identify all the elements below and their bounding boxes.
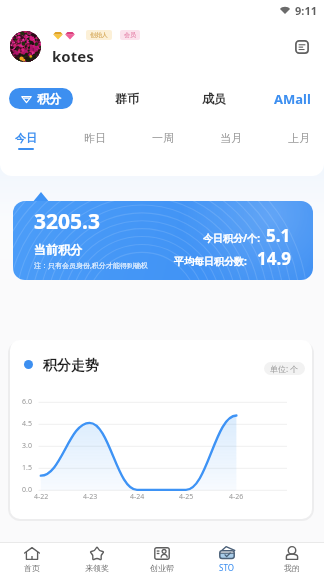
staticText: 4-22 — [34, 492, 49, 502]
staticText: 上月 — [288, 131, 310, 145]
staticText: 积分走势 — [43, 357, 99, 375]
button[interactable]: 3205.3 — [13, 201, 313, 280]
button[interactable]: 首页 — [0, 543, 64, 576]
staticText: 3205.3 — [34, 207, 100, 236]
button[interactable]: 今日 — [2, 131, 50, 155]
staticText: 首页 — [24, 563, 40, 573]
staticText: 创始人 — [90, 31, 108, 39]
button[interactable]: 当月 — [207, 131, 255, 155]
staticText: 今日 — [15, 131, 37, 145]
staticText: 注：只有会员身份,积分才能得到确权 — [34, 261, 148, 271]
button[interactable]: 群币 — [97, 88, 157, 109]
staticText: 9:11 — [295, 3, 317, 18]
staticText: 平均每日积分数: — [174, 254, 247, 268]
button[interactable]: 来领奖 — [64, 543, 129, 576]
button[interactable]: Announcements — [294, 39, 310, 55]
button[interactable]: 昨日 — [71, 131, 119, 155]
staticText: 积分 — [37, 91, 61, 106]
staticText: STO — [219, 562, 234, 573]
button[interactable]: 积分 — [9, 88, 73, 109]
staticText: 4-26 — [229, 492, 244, 502]
button[interactable]: 单位: 个 — [264, 362, 305, 375]
staticText: 当月 — [220, 131, 242, 145]
button[interactable]: 我的 — [259, 543, 324, 576]
button[interactable]: 成员 — [184, 88, 244, 109]
staticText: 4.5 — [22, 419, 32, 429]
staticText: 来领奖 — [85, 563, 109, 573]
staticText: kotes — [52, 46, 94, 66]
staticText: 5.1 — [266, 224, 291, 247]
staticText: 一周 — [152, 131, 174, 145]
button[interactable]: AMall — [262, 88, 322, 109]
staticText: 今日积分/个: — [203, 231, 260, 245]
staticText: 1.5 — [22, 463, 32, 473]
staticText: 4-23 — [83, 492, 98, 502]
staticText: 创业帮 — [150, 563, 174, 573]
staticText: 会员 — [124, 31, 136, 39]
button[interactable]: 创业帮 — [129, 543, 194, 576]
staticText: 14.9 — [257, 247, 291, 270]
staticText: 当前积分 — [34, 242, 82, 257]
button[interactable]: Profile avatar — [10, 31, 41, 62]
staticText: 4-24 — [130, 492, 145, 502]
staticText: AMall — [274, 90, 311, 108]
staticText: 群币 — [115, 91, 139, 106]
staticText: 0.0 — [22, 485, 32, 495]
staticText: 3.0 — [22, 441, 32, 451]
staticText: 4-25 — [179, 492, 194, 502]
staticText: 单位: 个 — [270, 363, 299, 374]
button[interactable]: STO — [194, 543, 259, 576]
button[interactable]: 一周 — [139, 131, 187, 155]
staticText: 成员 — [202, 91, 226, 106]
staticText: 昨日 — [84, 131, 106, 145]
staticText: 6.0 — [22, 397, 32, 407]
button[interactable]: 上月 — [275, 131, 323, 155]
staticText: 我的 — [284, 563, 300, 573]
